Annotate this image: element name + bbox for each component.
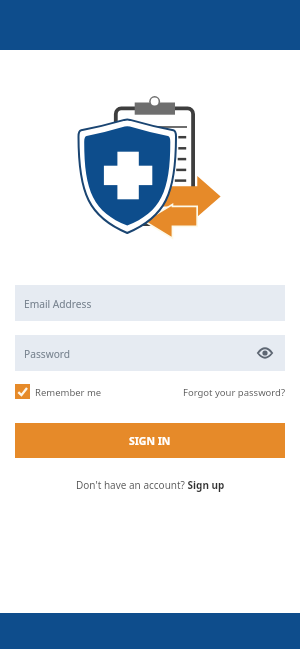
- staticText: Remember me: [35, 386, 102, 399]
- button[interactable]: Forgot your password?: [183, 385, 286, 398]
- button[interactable]: SIGN IN: [15, 423, 285, 458]
- staticText: Password: [24, 347, 71, 361]
- button[interactable]: Email Address: [15, 285, 285, 321]
- button[interactable]: Password: [15, 335, 285, 371]
- button[interactable]: Don't have an account? Sign up: [76, 478, 225, 492]
- button[interactable]: Show password: [254, 342, 276, 364]
- staticText: Email Address: [24, 297, 92, 311]
- button[interactable]: Remember me: [15, 384, 102, 399]
- staticText: SIGN IN: [129, 434, 171, 448]
